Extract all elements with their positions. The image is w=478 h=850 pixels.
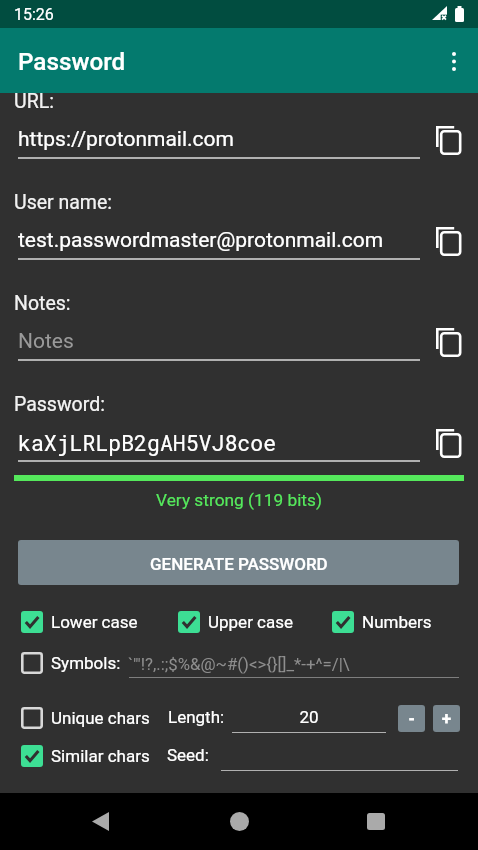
staticText: Notes: [14, 292, 71, 315]
staticText: 15:26 [14, 5, 54, 24]
staticText: - [409, 709, 415, 728]
staticText: Very strong (119 bits) [0, 490, 478, 510]
staticText: `'"!?,.:;$%&@~#()<>{}[]_*-+^=/|\ [128, 654, 350, 674]
button[interactable]: More options [430, 37, 478, 85]
staticText: Password [18, 48, 126, 76]
staticText: kaXjLRLpB2gAH5VJ8coe [18, 428, 277, 456]
button[interactable]: Unique chars [21, 707, 150, 729]
staticText: Notes [18, 329, 74, 354]
button[interactable]: Increase [433, 705, 460, 732]
staticText: Length: [168, 707, 225, 727]
button[interactable]: Lower case [21, 611, 138, 633]
staticText: Lower case [51, 612, 138, 632]
staticText: Symbols: [51, 653, 121, 673]
button[interactable]: Copy [426, 420, 472, 466]
staticText: + [442, 709, 451, 728]
staticText: Numbers [362, 612, 432, 632]
staticText: Password: [14, 393, 105, 416]
staticText: test.passwordmaster@protonmail.com [18, 228, 384, 253]
button[interactable]: Similar chars [21, 745, 150, 767]
staticText: User name: [14, 191, 113, 214]
button[interactable]: Copy [426, 218, 472, 264]
staticText: Seed: [167, 745, 209, 765]
button[interactable]: Back [76, 797, 124, 845]
button[interactable]: Upper case [178, 611, 294, 633]
staticText: https://protonmail.com [18, 127, 234, 152]
staticText: Unique chars [51, 708, 150, 728]
button[interactable]: Recents [352, 797, 400, 845]
button[interactable]: Home [215, 797, 263, 845]
button[interactable]: Decrease [398, 705, 425, 732]
button[interactable]: Symbols: [21, 652, 121, 674]
staticText: Upper case [208, 612, 294, 632]
staticText: URL: [14, 90, 54, 113]
button[interactable]: Numbers [332, 611, 432, 633]
staticText: GENERATE PASSWORD [150, 554, 328, 574]
staticText: 20 [232, 707, 386, 727]
button[interactable]: GENERATE PASSWORD [18, 540, 459, 585]
staticText: Similar chars [51, 746, 150, 766]
button[interactable]: Copy [426, 117, 472, 163]
button[interactable]: Copy [426, 319, 472, 365]
